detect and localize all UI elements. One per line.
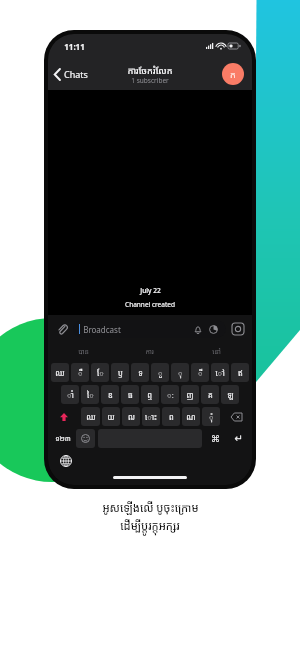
button[interactable]: ុ bbox=[171, 363, 189, 382]
button[interactable]: ឥ bbox=[231, 363, 249, 382]
staticText: បាន bbox=[78, 347, 89, 357]
button[interactable]: ៅ bbox=[211, 363, 229, 382]
button[interactable]: ី bbox=[191, 363, 209, 382]
button[interactable]: ួ bbox=[151, 363, 169, 382]
staticText: ឫ bbox=[118, 368, 123, 378]
staticText: ឡ bbox=[227, 390, 234, 400]
staticText: ដើម្បីប្ដូរក្តុអក្សរ bbox=[120, 518, 180, 533]
staticText: Channel created bbox=[125, 300, 175, 309]
button[interactable]: ៃ bbox=[81, 385, 99, 404]
button[interactable]: ោះ bbox=[142, 407, 160, 426]
staticText: ោះ bbox=[145, 412, 157, 422]
button[interactable]: Broadcast bbox=[73, 320, 226, 338]
staticText: ឌ bbox=[108, 390, 113, 400]
staticText: Broadcast bbox=[83, 324, 121, 335]
staticText: ឺ bbox=[78, 368, 83, 378]
staticText: ឍ bbox=[128, 412, 135, 422]
staticText: ុំ bbox=[209, 412, 214, 422]
staticText: ណ bbox=[186, 412, 196, 422]
button[interactable]: Command bbox=[204, 429, 227, 448]
staticText: អូសឡើងលើ បូចុះក្រោម bbox=[102, 500, 199, 515]
button[interactable]: ឈ bbox=[81, 407, 100, 426]
staticText: ព bbox=[169, 412, 174, 422]
button[interactable]: Mute notifications bbox=[191, 323, 204, 336]
staticText: ក bbox=[230, 68, 236, 80]
button[interactable]: ធ bbox=[121, 385, 139, 404]
staticText: ៃ bbox=[87, 390, 94, 400]
button[interactable]: ណ bbox=[182, 407, 200, 426]
staticText: ាំ bbox=[67, 390, 74, 400]
button[interactable]: Chats bbox=[48, 64, 94, 84]
staticText: ៈ bbox=[167, 390, 174, 400]
staticText: ទ bbox=[138, 368, 143, 378]
button[interactable]: Attach bbox=[53, 320, 71, 338]
staticText: គ bbox=[208, 390, 213, 400]
button[interactable]: ការ bbox=[116, 343, 183, 361]
button[interactable]: ាំ bbox=[61, 385, 79, 404]
staticText: ឈ bbox=[86, 412, 96, 422]
button[interactable]: ៈ bbox=[161, 385, 179, 404]
staticText: ែ bbox=[97, 368, 104, 378]
staticText: ញ bbox=[186, 390, 194, 400]
button[interactable]: យ bbox=[102, 407, 120, 426]
button[interactable]: ១២៣ bbox=[50, 429, 75, 448]
button[interactable]: នៅ bbox=[183, 343, 250, 361]
staticText: 1 subscriber bbox=[131, 76, 169, 85]
staticText: ធ bbox=[128, 390, 133, 400]
staticText: ុ bbox=[178, 368, 183, 378]
button[interactable]: ទ bbox=[131, 363, 149, 382]
staticText: July 22 bbox=[140, 286, 161, 295]
button[interactable]: ញ bbox=[181, 385, 199, 404]
staticText: នៅ bbox=[212, 347, 221, 357]
button[interactable]: ឡ bbox=[221, 385, 239, 404]
staticText: ១២៣ bbox=[55, 434, 71, 444]
button[interactable]: Shift bbox=[50, 407, 78, 426]
button[interactable]: ុំ bbox=[202, 407, 220, 426]
button[interactable]: Return bbox=[227, 429, 250, 448]
staticText: ួ bbox=[158, 368, 163, 378]
button[interactable]: ព bbox=[162, 407, 180, 426]
staticText: ឈ bbox=[55, 368, 65, 378]
staticText: ការចែករំលែក bbox=[127, 64, 173, 76]
button[interactable]: ែ bbox=[91, 363, 109, 382]
button[interactable]: Auto delete timer bbox=[207, 323, 220, 336]
button[interactable]: Emoji bbox=[76, 429, 95, 448]
button[interactable]: ឫ bbox=[111, 363, 129, 382]
button[interactable]: Backspace bbox=[223, 407, 250, 426]
staticText: ការ bbox=[145, 347, 154, 357]
staticText: ី bbox=[198, 368, 203, 378]
button[interactable]: គ bbox=[201, 385, 219, 404]
staticText: យ bbox=[107, 412, 115, 422]
button[interactable]: Channel avatar bbox=[222, 63, 244, 85]
staticText: ៅ bbox=[215, 368, 225, 378]
button[interactable]: Switch language bbox=[58, 453, 74, 469]
staticText: ឮ bbox=[147, 390, 153, 400]
staticText: ⌘ bbox=[211, 434, 220, 444]
button[interactable]: Camera bbox=[229, 320, 247, 338]
staticText: ↵ bbox=[234, 433, 243, 445]
staticText: Chats bbox=[64, 68, 88, 80]
button[interactable]: ឺ bbox=[71, 363, 89, 382]
button[interactable]: ឮ bbox=[141, 385, 159, 404]
button[interactable]: ឌ bbox=[101, 385, 119, 404]
staticText: ឥ bbox=[238, 368, 243, 378]
staticText: 11:11 bbox=[64, 41, 85, 52]
button[interactable]: បាន bbox=[50, 343, 116, 361]
button[interactable]: ឈ bbox=[51, 363, 69, 382]
button[interactable]: ឍ bbox=[122, 407, 140, 426]
